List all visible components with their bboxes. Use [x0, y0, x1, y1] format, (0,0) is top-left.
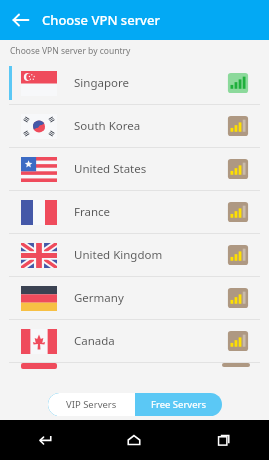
- button[interactable]: Recent apps: [179, 420, 269, 460]
- staticText: Choose VPN server by country: [10, 45, 131, 57]
- button[interactable]: Singapore: [0, 62, 269, 104]
- button[interactable]: Free Servers: [135, 393, 222, 416]
- button[interactable]: Back: [0, 420, 89, 460]
- staticText: VIP Servers: [66, 398, 117, 411]
- button[interactable]: Home: [89, 420, 179, 460]
- button[interactable]: South Korea: [0, 105, 269, 147]
- button[interactable]: United Kingdom: [0, 234, 269, 276]
- button[interactable]: VIP Servers: [48, 393, 135, 416]
- button[interactable]: Germany: [0, 277, 269, 319]
- button[interactable]: Canada: [0, 320, 269, 362]
- staticText: United States: [74, 161, 147, 177]
- staticText: South Korea: [74, 118, 141, 134]
- staticText: France: [74, 204, 111, 220]
- button[interactable]: France: [0, 191, 269, 233]
- button[interactable]: United States: [0, 148, 269, 190]
- staticText: Germany: [74, 290, 124, 306]
- staticText: Choose VPN server: [42, 11, 160, 29]
- staticText: United Kingdom: [74, 247, 163, 263]
- button[interactable]: Back: [6, 5, 36, 35]
- staticText: Free Servers: [151, 398, 207, 411]
- staticText: Canada: [74, 333, 115, 349]
- staticText: Singapore: [74, 75, 129, 91]
